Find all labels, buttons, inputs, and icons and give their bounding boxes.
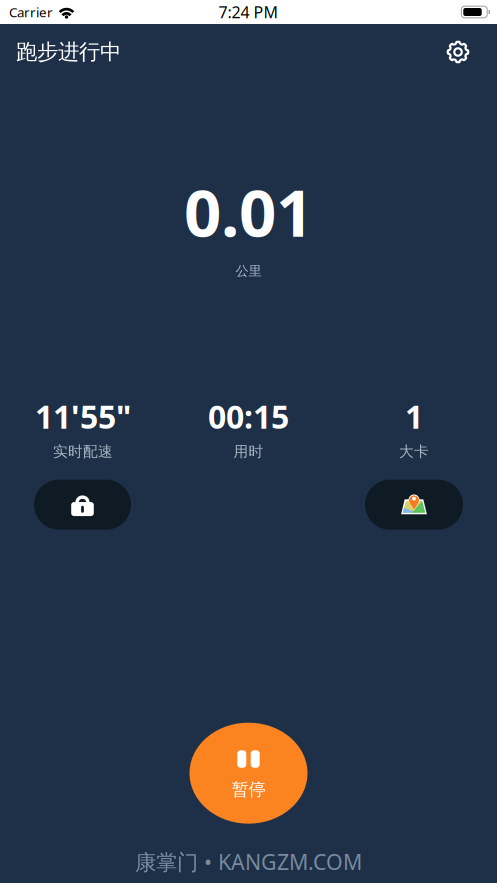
staticText: 用时 (233, 443, 263, 461)
button[interactable]: Lock screen (34, 480, 131, 530)
staticText: 7:24 PM (218, 1, 278, 23)
staticText: 公里 (235, 263, 261, 279)
button[interactable]: Map (365, 480, 463, 530)
staticText: 跑步进行中 (16, 39, 121, 65)
staticText: 0.01 (184, 168, 313, 255)
staticText: 实时配速 (53, 443, 113, 461)
staticText: 00:15 (208, 395, 289, 438)
staticText: 1 (405, 395, 423, 438)
staticText: 暂停 (231, 779, 265, 800)
button[interactable]: 暂停 (189, 723, 307, 824)
staticText: 大卡 (399, 443, 429, 461)
staticText: 11'55" (35, 395, 131, 438)
staticText: 康掌门 • KANGZM.COM (135, 848, 362, 876)
button[interactable]: Settings (436, 30, 480, 74)
staticText: Carrier (9, 3, 53, 21)
